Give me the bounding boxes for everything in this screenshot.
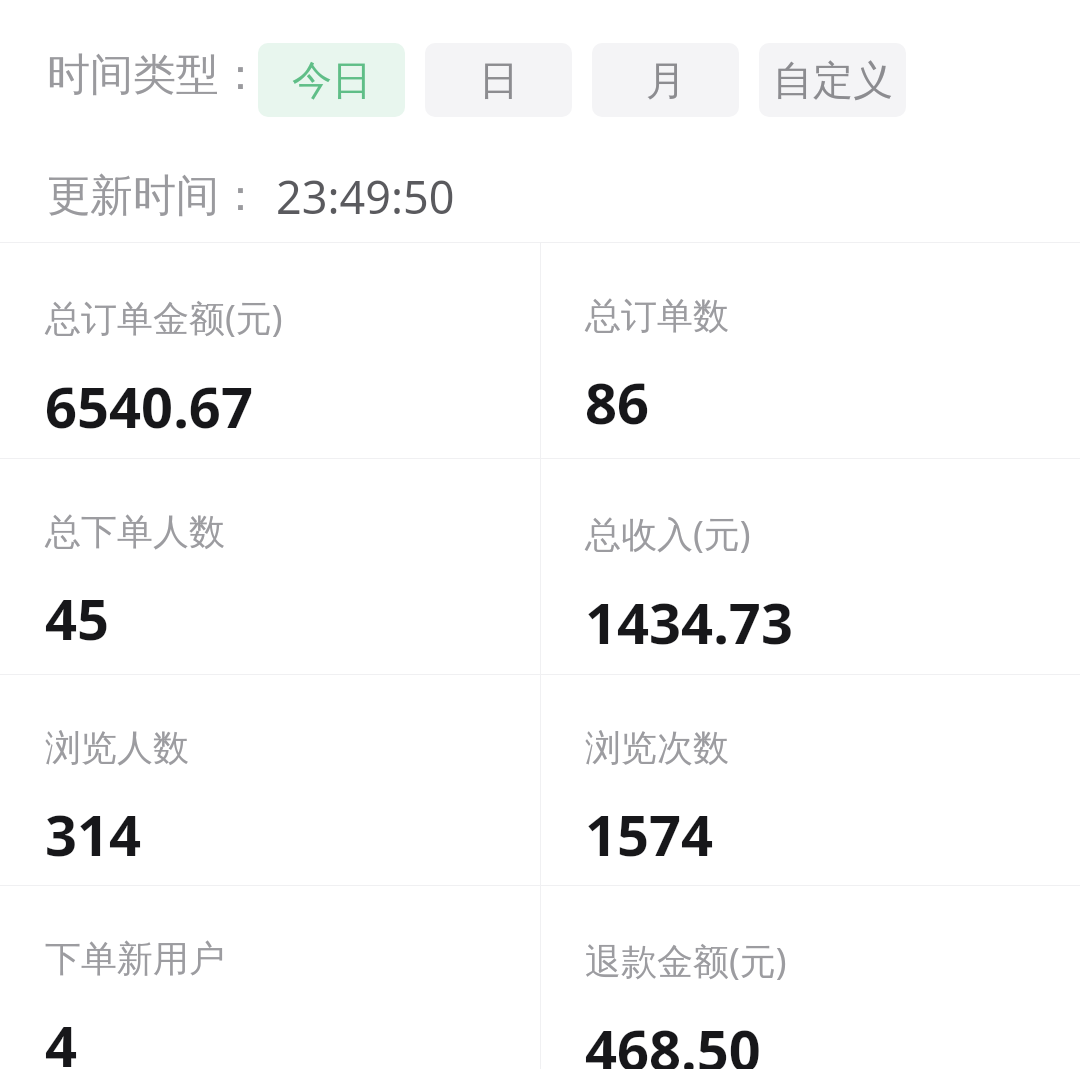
staticText: 日 (479, 55, 519, 105)
button[interactable]: 总订单金额(元) (0, 243, 540, 458)
button[interactable]: 今日 (258, 43, 405, 117)
staticText: 总收入(元) (585, 509, 751, 558)
button[interactable]: 总收入(元) (540, 459, 1080, 674)
staticText: 今日 (292, 55, 372, 105)
staticText: 4 (45, 1007, 78, 1069)
button[interactable]: 浏览次数 (540, 675, 1080, 885)
staticText: 468.50 (585, 1011, 761, 1069)
staticText: 浏览人数 (45, 725, 189, 770)
button[interactable]: 下单新用户 (0, 886, 540, 1069)
button[interactable]: 总下单人数 (0, 459, 540, 674)
staticText: 月 (646, 55, 686, 105)
staticText: 总订单数 (585, 293, 729, 338)
staticText: 自定义 (773, 55, 893, 105)
staticText: 更新时间： (47, 169, 262, 223)
button[interactable]: 月 (592, 43, 739, 117)
staticText: 23:49:50 (276, 166, 455, 227)
button[interactable]: 日 (425, 43, 572, 117)
staticText: 退款金额(元) (585, 936, 787, 985)
staticText: 时间类型： (47, 48, 262, 102)
button[interactable]: 总订单数 (540, 243, 1080, 458)
button[interactable]: 退款金额(元) (540, 886, 1080, 1069)
staticText: 314 (45, 796, 142, 872)
button[interactable]: 浏览人数 (0, 675, 540, 885)
staticText: 86 (585, 364, 650, 440)
staticText: 6540.67 (45, 368, 253, 444)
staticText: 1434.73 (585, 584, 793, 660)
staticText: 总订单金额(元) (45, 293, 283, 342)
button[interactable]: 自定义 (759, 43, 906, 117)
staticText: 下单新用户 (45, 936, 225, 981)
staticText: 总下单人数 (45, 509, 225, 554)
staticText: 1574 (585, 796, 714, 872)
staticText: 浏览次数 (585, 725, 729, 770)
staticText: 45 (45, 580, 110, 656)
